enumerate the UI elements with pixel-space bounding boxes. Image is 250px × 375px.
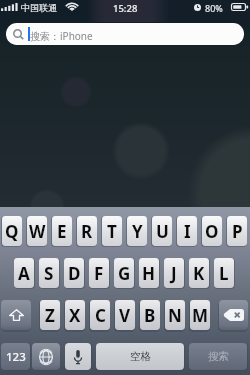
button[interactable]: C — [90, 300, 110, 330]
button[interactable]: V — [115, 300, 135, 330]
staticText: F — [94, 262, 104, 285]
button[interactable]: F — [89, 258, 109, 288]
staticText: 15:28 — [113, 2, 138, 15]
button[interactable]: 搜索 — [189, 343, 247, 370]
button[interactable]: G — [114, 258, 134, 288]
staticText: H — [142, 262, 156, 285]
staticText: N — [168, 304, 182, 327]
staticText: D — [68, 262, 81, 285]
staticText: V — [119, 304, 131, 327]
button[interactable]: S — [39, 258, 59, 288]
staticText: X — [69, 304, 81, 327]
button[interactable]: O — [202, 216, 222, 246]
staticText: Z — [45, 304, 55, 327]
button[interactable]: D — [64, 258, 84, 288]
staticText: T — [107, 220, 117, 243]
button[interactable]: U — [152, 216, 172, 246]
staticText: L — [219, 262, 229, 285]
staticText: J — [171, 262, 177, 285]
button[interactable]: K — [189, 258, 209, 288]
staticText: C — [95, 304, 106, 327]
staticText: R — [81, 220, 93, 243]
staticText: Q — [5, 220, 19, 243]
button[interactable]: T — [102, 216, 122, 246]
button[interactable]: 搜索：iPhone — [6, 23, 244, 45]
button[interactable]: 123 — [1, 343, 30, 370]
button[interactable]: N — [165, 300, 185, 330]
staticText: B — [144, 304, 156, 327]
staticText: 123 — [6, 349, 26, 365]
staticText: K — [193, 262, 205, 285]
button[interactable]: Shift — [1, 300, 31, 330]
staticText: A — [18, 262, 30, 285]
staticText: 中国联通 — [21, 2, 57, 13]
button[interactable]: Dictation — [65, 343, 91, 370]
button[interactable]: J — [164, 258, 184, 288]
staticText: G — [118, 262, 131, 285]
button[interactable]: Backspace — [219, 300, 248, 330]
button[interactable]: E — [52, 216, 72, 246]
staticText: 搜索：iPhone — [30, 29, 93, 43]
button[interactable]: L — [214, 258, 234, 288]
button[interactable]: P — [227, 216, 247, 246]
button[interactable]: Q — [2, 216, 22, 246]
button[interactable]: H — [139, 258, 159, 288]
staticText: 空格 — [130, 350, 151, 363]
staticText: S — [44, 262, 54, 285]
staticText: 搜索 — [208, 350, 229, 363]
staticText: O — [205, 220, 219, 243]
button[interactable]: Next keyboard — [32, 343, 60, 370]
button[interactable]: A — [14, 258, 34, 288]
button[interactable]: Y — [127, 216, 147, 246]
staticText: M — [192, 304, 209, 327]
button[interactable]: R — [77, 216, 97, 246]
button[interactable]: 空格 — [96, 343, 184, 370]
button[interactable]: Z — [40, 300, 60, 330]
staticText: Y — [132, 220, 143, 243]
button[interactable]: W — [27, 216, 47, 246]
staticText: E — [57, 220, 67, 243]
button[interactable]: M — [190, 300, 210, 330]
button[interactable]: I — [177, 216, 197, 246]
staticText: I — [184, 220, 191, 243]
staticText: 80% — [205, 2, 223, 14]
button[interactable]: B — [140, 300, 160, 330]
staticText: W — [29, 220, 46, 243]
staticText: P — [232, 220, 243, 243]
staticText: U — [156, 220, 169, 243]
button[interactable]: X — [65, 300, 85, 330]
